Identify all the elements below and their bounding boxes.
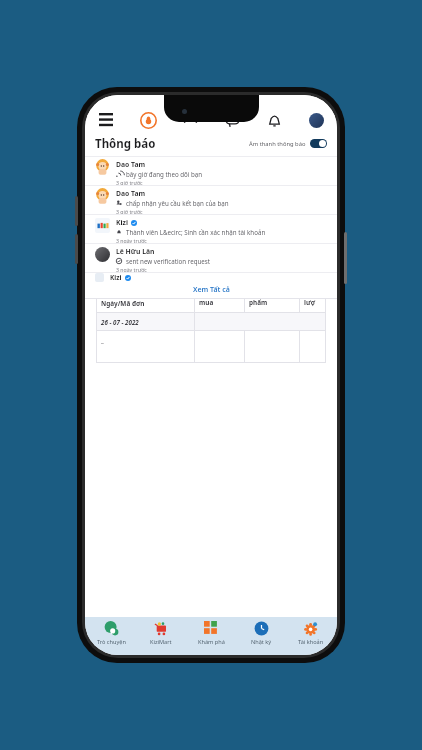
staticText: Nhật ký bbox=[251, 638, 272, 646]
staticText: Xem Tất cả bbox=[193, 285, 230, 295]
button[interactable]: Âm thanh thông báo bbox=[249, 139, 327, 148]
staticText: 3 giờ trước bbox=[116, 179, 143, 185]
button[interactable]: Profile bbox=[305, 109, 327, 131]
button[interactable]: Home bbox=[137, 109, 159, 131]
button[interactable]: Khám phá bbox=[187, 621, 235, 646]
button[interactable]: Messages bbox=[221, 109, 243, 131]
staticText: 3 ngày trước bbox=[116, 266, 147, 272]
staticText: Ngày/Mã đơn bbox=[101, 299, 145, 308]
button[interactable]: Kizi bbox=[85, 215, 337, 243]
staticText: sent new verification request bbox=[126, 257, 210, 265]
staticText: 3 giờ trước bbox=[116, 208, 143, 214]
button[interactable]: Tài khoản bbox=[287, 621, 335, 646]
staticText: 26 - 07 - 2022 bbox=[101, 318, 139, 326]
button[interactable]: Lê Hữu Lân bbox=[85, 244, 337, 272]
button[interactable]: Notifications bbox=[263, 109, 285, 131]
staticText: _ bbox=[101, 336, 104, 344]
staticText: Dao Tam bbox=[116, 160, 146, 169]
staticText: Người bbox=[199, 288, 220, 297]
staticText: Khám phá bbox=[198, 638, 225, 646]
button[interactable]: Trò chuyện bbox=[87, 621, 135, 646]
staticText: chấp nhận yêu cầu kết bạn của bạn bbox=[126, 199, 229, 207]
staticText: hơn. bbox=[96, 220, 326, 229]
button[interactable]: Friends bbox=[179, 109, 201, 131]
button[interactable]: Menu bbox=[95, 109, 117, 131]
button[interactable]: Nhật ký bbox=[237, 621, 285, 646]
staticText: bây giờ đang theo dõi bạn bbox=[126, 170, 203, 178]
staticText: Bạn chưa đủ số tiền rút tối thiểu bbox=[96, 240, 326, 249]
button[interactable]: Dao Tam bbox=[85, 157, 337, 185]
staticText: mua bbox=[199, 298, 214, 307]
button[interactable]: Dao Tam bbox=[85, 186, 337, 214]
staticText: Trò chuyện bbox=[97, 638, 126, 646]
staticText: Dao Tam bbox=[116, 189, 146, 198]
staticText: lượ bbox=[304, 298, 316, 307]
staticText: Thông báo bbox=[95, 136, 156, 152]
staticText: Kizi bbox=[116, 218, 128, 227]
staticText: Âm thanh thông báo bbox=[249, 140, 306, 148]
staticText: 3 ngày trước bbox=[116, 237, 147, 243]
staticText: Tài khoản bbox=[298, 638, 324, 646]
staticText: Bảng kê thu nhập tháng này: bbox=[96, 262, 208, 273]
staticText: Thành viên L&ecirc; Sinh cần xác nhận tà… bbox=[126, 228, 266, 236]
button[interactable]: Xem Tất cả bbox=[85, 282, 337, 298]
staticText: KiziMart bbox=[150, 638, 172, 646]
staticText: Kizi bbox=[110, 273, 122, 282]
staticText: để được trở thành Đại lý với nhiều chính… bbox=[96, 211, 326, 220]
button[interactable]: KiziMart bbox=[137, 621, 185, 646]
staticText: phẩm bbox=[249, 298, 268, 307]
staticText: Lê Hữu Lân bbox=[116, 247, 155, 256]
